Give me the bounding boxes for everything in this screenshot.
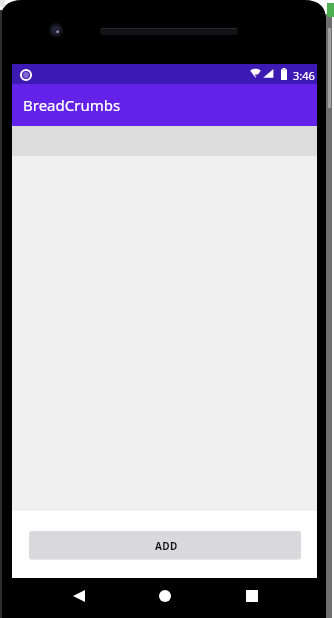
button[interactable]: ADD	[29, 531, 301, 559]
staticText: ADD	[155, 539, 178, 553]
button[interactable]: Home	[144, 578, 186, 614]
staticText: BreadCrumbs	[23, 95, 121, 115]
button[interactable]: Recents	[231, 578, 273, 614]
staticText: 3:46	[293, 68, 315, 83]
button[interactable]: Back	[58, 578, 99, 614]
